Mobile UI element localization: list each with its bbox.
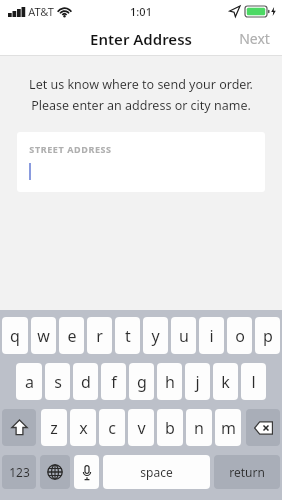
staticText: o: [235, 325, 245, 347]
button[interactable]: Dictate: [74, 455, 99, 489]
staticText: m: [221, 417, 236, 439]
staticText: y: [151, 325, 160, 347]
button[interactable]: x: [70, 409, 96, 446]
button[interactable]: n: [186, 409, 212, 446]
staticText: p: [263, 325, 273, 347]
button[interactable]: s: [45, 363, 70, 400]
staticText: s: [54, 371, 62, 393]
button[interactable]: q: [2, 317, 28, 354]
button[interactable]: space: [103, 455, 210, 489]
staticText: k: [221, 371, 230, 393]
button[interactable]: 123: [2, 455, 36, 489]
staticText: q: [10, 325, 20, 347]
button[interactable]: p: [255, 317, 280, 354]
button[interactable]: g: [129, 363, 154, 400]
button[interactable]: k: [213, 363, 238, 400]
button[interactable]: r: [87, 317, 112, 354]
staticText: c: [108, 417, 116, 439]
button[interactable]: u: [171, 317, 196, 354]
button[interactable]: Shift: [2, 409, 36, 446]
staticText: Enter Address: [90, 29, 192, 49]
staticText: v: [137, 417, 146, 439]
staticText: j: [195, 371, 200, 393]
button[interactable]: Backspace: [246, 409, 280, 446]
button[interactable]: z: [41, 409, 67, 446]
button[interactable]: h: [157, 363, 182, 400]
button[interactable]: w: [31, 317, 56, 354]
staticText: a: [25, 371, 34, 393]
staticText: Let us know where to send your order.: [29, 76, 253, 93]
staticText: Next: [239, 29, 270, 48]
button[interactable]: l: [241, 363, 266, 400]
button[interactable]: e: [59, 317, 84, 354]
button[interactable]: m: [215, 409, 241, 446]
button[interactable]: return: [214, 455, 280, 489]
staticText: STREET ADDRESS: [29, 143, 112, 155]
staticText: e: [67, 325, 77, 347]
staticText: space: [140, 464, 173, 480]
staticText: h: [165, 371, 175, 393]
button[interactable]: i: [199, 317, 224, 354]
staticText: z: [50, 417, 58, 439]
staticText: r: [96, 325, 103, 347]
button[interactable]: f: [101, 363, 126, 400]
staticText: d: [81, 371, 91, 393]
staticText: b: [165, 417, 175, 439]
button[interactable]: b: [157, 409, 183, 446]
staticText: i: [209, 325, 214, 347]
button[interactable]: Next: [227, 23, 282, 54]
button[interactable]: t: [115, 317, 140, 354]
button[interactable]: j: [185, 363, 210, 400]
button[interactable]: Switch keyboard: [40, 455, 70, 489]
button[interactable]: v: [128, 409, 154, 446]
button[interactable]: o: [227, 317, 252, 354]
staticText: w: [37, 325, 50, 347]
staticText: 123: [9, 464, 30, 480]
button[interactable]: c: [99, 409, 125, 446]
staticText: AT&T: [28, 4, 54, 19]
staticText: return: [229, 464, 265, 480]
button[interactable]: d: [73, 363, 98, 400]
button[interactable]: STREET ADDRESS: [17, 132, 265, 192]
button[interactable]: y: [143, 317, 168, 354]
staticText: t: [125, 325, 131, 347]
staticText: u: [179, 325, 189, 347]
staticText: g: [137, 371, 147, 393]
staticText: l: [251, 371, 256, 393]
button[interactable]: a: [16, 363, 42, 400]
staticText: Please enter an address or city name.: [31, 97, 251, 114]
staticText: x: [79, 417, 88, 439]
staticText: f: [111, 371, 117, 393]
staticText: n: [194, 417, 204, 439]
staticText: 1:01: [130, 4, 152, 19]
